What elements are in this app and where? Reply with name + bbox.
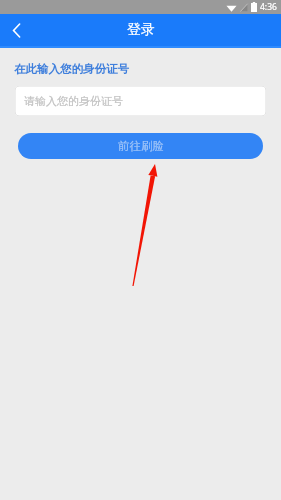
button[interactable]: Back — [0, 14, 32, 46]
staticText: 登录 — [127, 21, 155, 39]
staticText: 在此输入您的身份证号 — [14, 62, 129, 76]
staticText: 前往刷脸 — [118, 139, 164, 153]
button[interactable]: 前往刷脸 — [18, 133, 263, 159]
staticText: 4:36 — [260, 1, 277, 13]
button[interactable]: 请输入您的身份证号 — [15, 86, 266, 116]
staticText: 请输入您的身份证号 — [24, 94, 123, 108]
